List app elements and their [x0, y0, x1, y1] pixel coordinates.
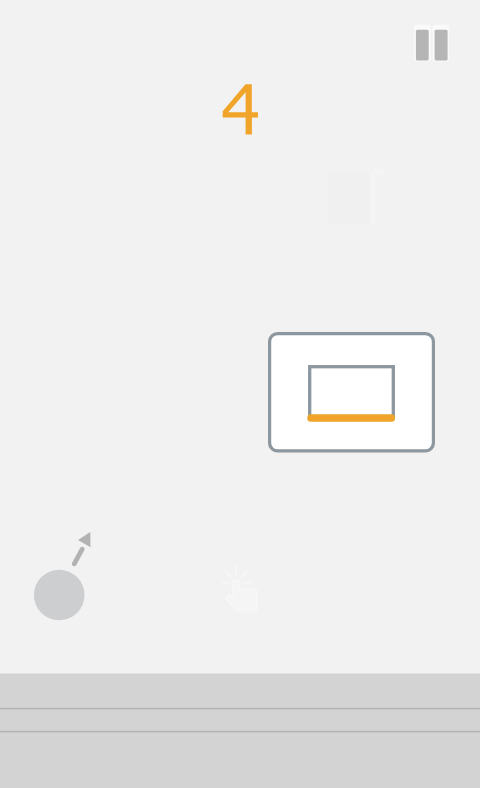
button[interactable]: Platform	[266, 330, 438, 455]
button[interactable]: Player ball	[30, 526, 94, 622]
button[interactable]: Pause	[408, 18, 454, 68]
